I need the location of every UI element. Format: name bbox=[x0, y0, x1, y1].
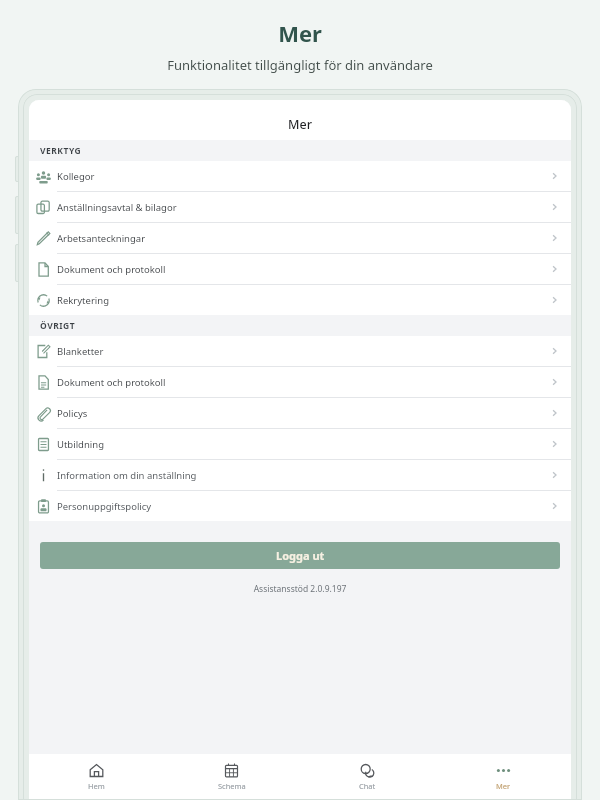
staticText: Funktionalitet tillgängligt för din anvä… bbox=[0, 56, 600, 74]
button[interactable]: Chat bbox=[299, 754, 435, 800]
staticText: VERKTYG bbox=[40, 145, 82, 157]
staticText: ÖVRIGT bbox=[40, 320, 76, 332]
button[interactable]: Dokument och protokoll bbox=[29, 367, 571, 397]
button[interactable]: Schema bbox=[164, 754, 299, 800]
staticText: Blanketter bbox=[57, 345, 549, 358]
button[interactable]: Dokument och protokoll bbox=[29, 254, 571, 284]
staticText: Mer bbox=[496, 781, 511, 791]
staticText: Anställningsavtal & bilagor bbox=[57, 201, 549, 214]
staticText: Hem bbox=[88, 781, 105, 791]
button[interactable]: Arbetsanteckningar bbox=[29, 223, 571, 253]
button[interactable]: Personuppgiftspolicy bbox=[29, 491, 571, 521]
staticText: Dokument och protokoll bbox=[57, 376, 549, 389]
staticText: Mer bbox=[0, 18, 600, 48]
button[interactable]: Kollegor bbox=[29, 161, 571, 191]
button[interactable]: Anställningsavtal & bilagor bbox=[29, 192, 571, 222]
staticText: Information om din anställning bbox=[57, 469, 549, 482]
staticText: Utbildning bbox=[57, 438, 549, 451]
button[interactable]: Information om din anställning bbox=[29, 460, 571, 490]
staticText: Kollegor bbox=[57, 170, 549, 183]
button[interactable]: Logga ut bbox=[40, 542, 560, 569]
button[interactable]: Blanketter bbox=[29, 336, 571, 366]
staticText: Arbetsanteckningar bbox=[57, 232, 549, 245]
staticText: Rekrytering bbox=[57, 294, 549, 307]
staticText: Personuppgiftspolicy bbox=[57, 500, 549, 513]
staticText: Mer bbox=[288, 116, 312, 133]
staticText: Dokument och protokoll bbox=[57, 263, 549, 276]
button[interactable]: Rekrytering bbox=[29, 285, 571, 315]
button[interactable]: Utbildning bbox=[29, 429, 571, 459]
staticText: Assistansstöd 2.0.9.197 bbox=[29, 583, 571, 595]
staticText: Chat bbox=[359, 781, 376, 791]
button[interactable]: Hem bbox=[29, 754, 164, 800]
staticText: Schema bbox=[218, 781, 246, 791]
button[interactable]: Policys bbox=[29, 398, 571, 428]
staticText: Logga ut bbox=[276, 548, 325, 563]
staticText: Policys bbox=[57, 407, 549, 420]
button[interactable]: Mer bbox=[435, 754, 571, 800]
